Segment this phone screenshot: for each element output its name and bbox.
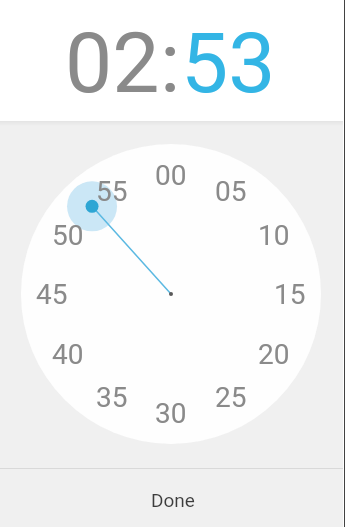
button[interactable]: 02: [65, 14, 160, 112]
staticText: 30: [155, 397, 187, 430]
button[interactable]: 15: [266, 276, 314, 312]
staticText: 10: [258, 219, 290, 252]
button[interactable]: Done: [0, 469, 345, 527]
button[interactable]: 53: [181, 14, 276, 112]
button[interactable]: 55: [88, 173, 136, 209]
button[interactable]: 45: [28, 276, 76, 312]
staticText: 35: [96, 381, 128, 414]
staticText: 53: [181, 14, 276, 112]
button[interactable]: 25: [207, 379, 255, 415]
button[interactable]: 35: [88, 379, 136, 415]
staticText: Done: [151, 489, 195, 511]
button[interactable]: 05: [207, 173, 255, 209]
button[interactable]: 20: [250, 336, 298, 372]
staticText: 00: [155, 159, 187, 192]
staticText: 25: [215, 381, 247, 414]
staticText: 45: [36, 278, 68, 311]
staticText: 40: [52, 338, 84, 371]
staticText: 15: [274, 278, 306, 311]
button[interactable]: 30: [147, 395, 195, 431]
button[interactable]: 50: [44, 217, 92, 253]
staticText: 20: [258, 338, 290, 371]
button[interactable]: 00: [147, 157, 195, 193]
staticText: 55: [96, 175, 128, 208]
button[interactable]: 40: [44, 336, 92, 372]
button[interactable]: 10: [250, 217, 298, 253]
staticText: 50: [52, 219, 84, 252]
staticText: 02: [65, 14, 160, 112]
staticText: 05: [215, 175, 247, 208]
staticText: :: [160, 14, 181, 112]
